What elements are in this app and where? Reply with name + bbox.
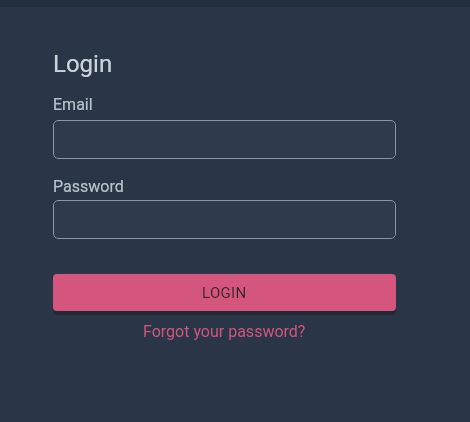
button[interactable] bbox=[53, 120, 396, 159]
staticText: LOGIN bbox=[202, 284, 247, 302]
staticText: Email bbox=[53, 95, 93, 114]
button[interactable] bbox=[53, 200, 396, 239]
staticText: Login bbox=[53, 50, 113, 78]
button[interactable]: LOGIN bbox=[53, 274, 396, 311]
button[interactable]: Forgot your password? bbox=[143, 322, 306, 341]
staticText: Password bbox=[53, 177, 124, 196]
